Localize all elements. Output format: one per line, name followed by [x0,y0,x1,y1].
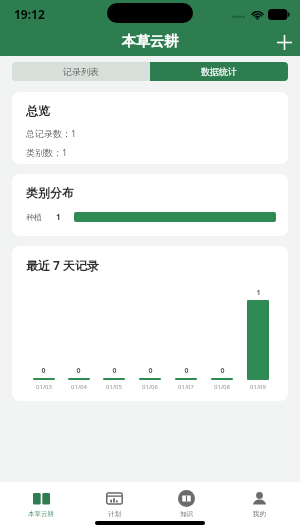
staticText: 0 [76,366,81,376]
button[interactable]: 计划 [83,488,145,518]
button[interactable]: 知识 [155,488,217,518]
staticText: 本草云耕 [28,510,54,518]
staticText: 总记录数：1 [26,127,77,139]
staticText: 0 [220,366,225,376]
staticText: 最近 7 天记录 [26,257,100,273]
staticText: 计划 [108,510,121,518]
staticText: 01/04 [71,383,87,391]
button[interactable]: 我的 [228,488,290,518]
staticText: 01/08 [214,383,230,391]
staticText: 01/06 [142,383,158,391]
button[interactable]: 总览 [12,92,288,164]
staticText: 0 [112,366,117,376]
button[interactable]: 数据统计 [150,62,288,81]
staticText: 总览 [26,103,50,118]
staticText: 本草云耕 [122,33,178,51]
staticText: 01/09 [250,383,266,391]
staticText: 0 [41,366,46,376]
staticText: 0 [184,366,189,376]
staticText: 记录列表 [63,66,99,77]
staticText: 知识 [180,510,193,518]
staticText: 01/05 [106,383,122,391]
button[interactable]: 类别分布 [12,174,288,236]
button[interactable]: 本草云耕 [10,488,72,518]
staticText: 1 [256,288,261,298]
staticText: 类别数：1 [26,146,68,158]
button[interactable]: Add record [268,28,300,56]
staticText: 0 [148,366,153,376]
button[interactable]: 最近 7 天记录 [12,246,288,401]
staticText: 种植 [26,212,56,222]
staticText: 01/03 [36,383,52,391]
staticText: 1 [56,211,74,222]
staticText: 19:12 [14,6,45,22]
staticText: 01/07 [178,383,194,391]
button[interactable]: 记录列表 [12,62,150,81]
staticText: 数据统计 [201,66,237,77]
staticText: 类别分布 [26,185,74,200]
staticText: 我的 [253,510,266,518]
